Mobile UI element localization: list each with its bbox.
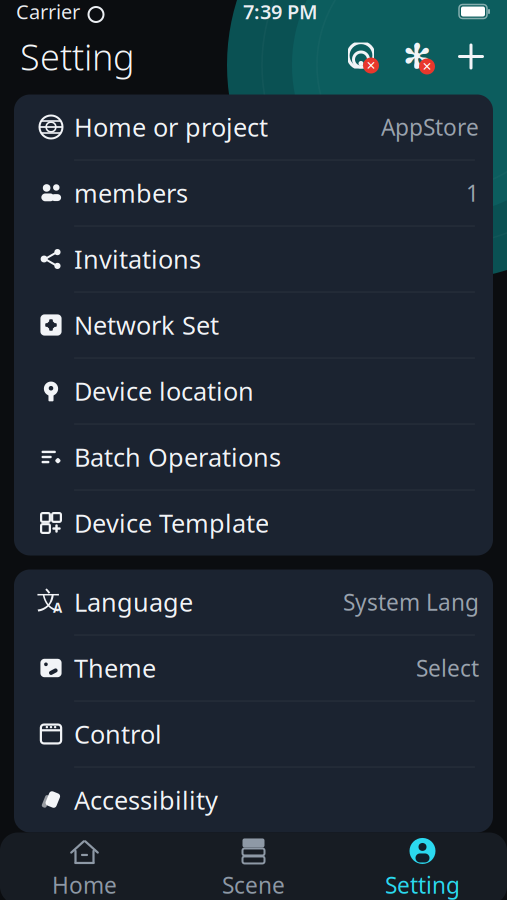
button[interactable]: Device Template (14, 490, 493, 555)
staticText: Device location (74, 374, 254, 408)
staticText: Carrier (16, 0, 80, 25)
staticText: Home (52, 870, 117, 900)
staticText: System Lang (343, 587, 479, 617)
staticText: Invitations (74, 242, 201, 276)
button[interactable]: 文 (14, 569, 493, 634)
staticText: 1 (466, 178, 479, 208)
staticText: Scene (222, 870, 285, 900)
staticText: Network Set (74, 308, 219, 342)
staticText: ✕ (422, 60, 432, 73)
staticText: Accessibility (74, 783, 218, 817)
staticText: A (53, 599, 62, 616)
staticText: Setting (20, 33, 135, 80)
staticText: ✕ (366, 59, 376, 72)
button[interactable]: Accessibility (14, 767, 493, 832)
button[interactable]: Setting (338, 833, 507, 900)
button[interactable]: members (14, 160, 493, 225)
button[interactable]: Network Set (14, 292, 493, 357)
button[interactable]: Batch Operations (14, 424, 493, 489)
button[interactable]: Invitations (14, 226, 493, 291)
button[interactable]: Add (437, 36, 491, 76)
button[interactable]: Home or project (14, 94, 493, 159)
staticText: Theme (74, 651, 156, 685)
staticText: 7:39 PM (243, 0, 318, 25)
button[interactable]: Scene (169, 833, 338, 900)
staticText: members (74, 176, 188, 210)
button[interactable]: Device location (14, 358, 493, 423)
button[interactable]: Bluetooth disconnected (381, 36, 437, 76)
staticText: AppStore (381, 112, 479, 142)
staticText: Language (74, 585, 193, 619)
button[interactable]: Home (0, 833, 169, 900)
staticText: Home or project (74, 110, 268, 144)
staticText: 文 (37, 586, 61, 615)
button[interactable]: Wi-Fi disconnected (341, 36, 381, 76)
button[interactable]: Theme (14, 635, 493, 700)
staticText: Device Template (74, 506, 269, 540)
staticText: Select (416, 653, 479, 683)
button[interactable]: Control (14, 701, 493, 766)
staticText: Setting (385, 870, 460, 900)
staticText: ✻ (402, 37, 431, 76)
staticText: Batch Operations (74, 440, 281, 474)
staticText: Control (74, 717, 162, 751)
